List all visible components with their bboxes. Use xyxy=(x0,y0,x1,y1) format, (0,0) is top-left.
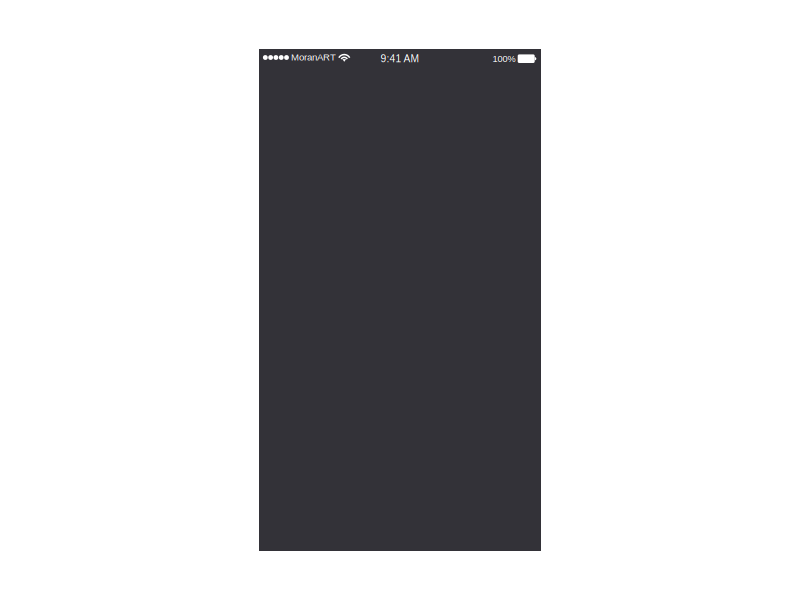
staticText: MoranART xyxy=(291,52,336,62)
staticText: 9:41 AM xyxy=(380,53,419,64)
staticText: 100% xyxy=(492,54,515,64)
